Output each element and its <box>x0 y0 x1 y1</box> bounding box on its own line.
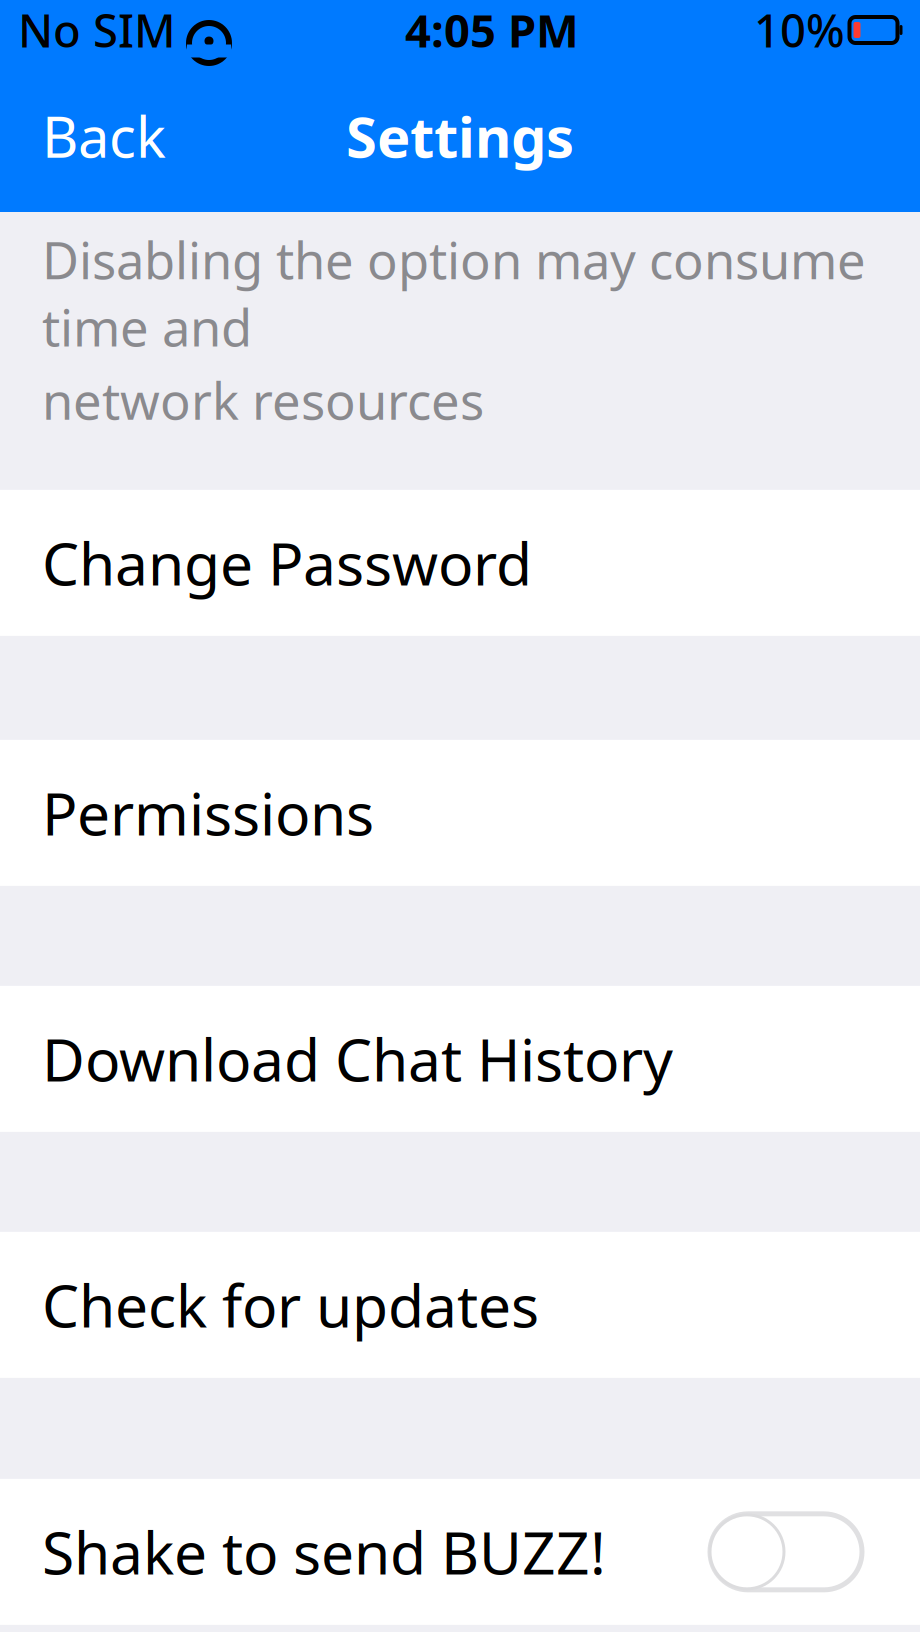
staticText: No SIM <box>18 0 176 60</box>
staticText: network resources <box>42 367 484 434</box>
staticText: 10% <box>754 0 845 60</box>
staticText <box>845 18 850 42</box>
button[interactable]: Back <box>0 60 208 212</box>
staticText: Settings <box>346 99 574 173</box>
staticText: Download Chat History <box>42 1020 673 1098</box>
staticText: Check for updates <box>42 1266 539 1344</box>
button[interactable]: Shake to send BUZZ! <box>0 1479 920 1625</box>
staticText <box>176 0 188 60</box>
staticText: Back <box>42 99 166 173</box>
staticText: 4:05 PM <box>405 0 579 60</box>
button[interactable]: Download Chat History <box>0 986 920 1132</box>
staticText: Permissions <box>42 774 374 852</box>
button[interactable]: Permissions <box>0 740 920 886</box>
staticText: Shake to send BUZZ! <box>42 1513 606 1591</box>
button[interactable]: Change Password <box>0 490 920 636</box>
staticText: Change Password <box>42 524 532 602</box>
button[interactable]: Check for updates <box>0 1232 920 1378</box>
staticText: Disabling the option may consume time an… <box>42 226 866 361</box>
